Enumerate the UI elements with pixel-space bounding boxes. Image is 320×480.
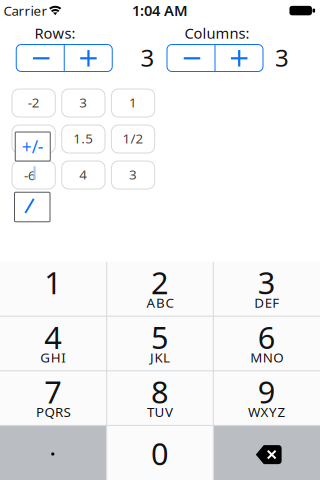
button[interactable]: 0 [107, 426, 213, 480]
staticText: Columns: [184, 23, 249, 43]
staticText: 6 [258, 317, 276, 357]
button[interactable] [168, 45, 216, 72]
staticText: TUV [147, 403, 173, 421]
staticText: Rows: [34, 23, 75, 43]
staticText: 4 [44, 317, 62, 357]
staticText: 7 [44, 371, 62, 412]
staticText: -2 [28, 93, 40, 111]
button[interactable]: 9 [214, 371, 320, 425]
staticText: 1 [44, 262, 62, 303]
staticText: 3 [275, 42, 289, 73]
staticText: 4 [79, 165, 87, 183]
staticText: 1 [129, 93, 137, 111]
staticText: PQRS [36, 403, 70, 421]
button[interactable]: 7 [0, 371, 106, 425]
staticText: 9 [258, 371, 276, 412]
button[interactable]: 2 [107, 262, 213, 316]
button[interactable]: 1 [0, 262, 106, 316]
staticText: WXYZ [248, 403, 286, 421]
button[interactable] [64, 45, 112, 72]
staticText: Carrier [3, 2, 47, 19]
staticText: 3 [129, 165, 137, 183]
staticText: DEF [254, 294, 279, 311]
button[interactable]: 3 [214, 262, 320, 316]
button[interactable]: 4 [62, 161, 105, 189]
button[interactable]: 5 [107, 316, 213, 370]
button[interactable]: 8 [107, 371, 213, 425]
staticText: 2 [151, 262, 169, 303]
button[interactable] [0, 427, 106, 480]
staticText: MNO [250, 348, 283, 366]
staticText: 3 [79, 93, 87, 111]
staticText: GHI [40, 348, 66, 366]
staticText: -6 [24, 166, 36, 184]
button[interactable] [215, 45, 263, 72]
staticText: 3 [140, 42, 154, 73]
button[interactable] [17, 45, 65, 72]
staticText: JKL [150, 348, 170, 366]
button[interactable]: 3 [111, 161, 155, 189]
staticText: ABC [146, 294, 173, 311]
staticText: 8 [151, 371, 169, 412]
button[interactable] [214, 425, 320, 480]
button[interactable]: 6 [214, 316, 320, 370]
button[interactable]: -6 [12, 161, 55, 189]
button[interactable] [12, 125, 55, 153]
staticText: 3 [258, 262, 276, 303]
staticText: 1/2 [123, 129, 144, 147]
button[interactable]: +/- [15, 132, 50, 161]
button[interactable] [14, 192, 50, 222]
button[interactable]: -2 [12, 89, 55, 117]
staticText: 1:04 AM [132, 0, 188, 20]
button[interactable]: 3 [62, 89, 105, 117]
staticText: +/- [22, 135, 44, 158]
button[interactable]: 4 [0, 316, 106, 370]
staticText: 1.5 [73, 129, 93, 147]
staticText: 0 [151, 433, 169, 474]
staticText: 5 [151, 317, 169, 357]
button[interactable]: 1/2 [111, 125, 155, 153]
button[interactable]: 1.5 [62, 125, 105, 153]
button[interactable]: 1 [111, 89, 155, 117]
